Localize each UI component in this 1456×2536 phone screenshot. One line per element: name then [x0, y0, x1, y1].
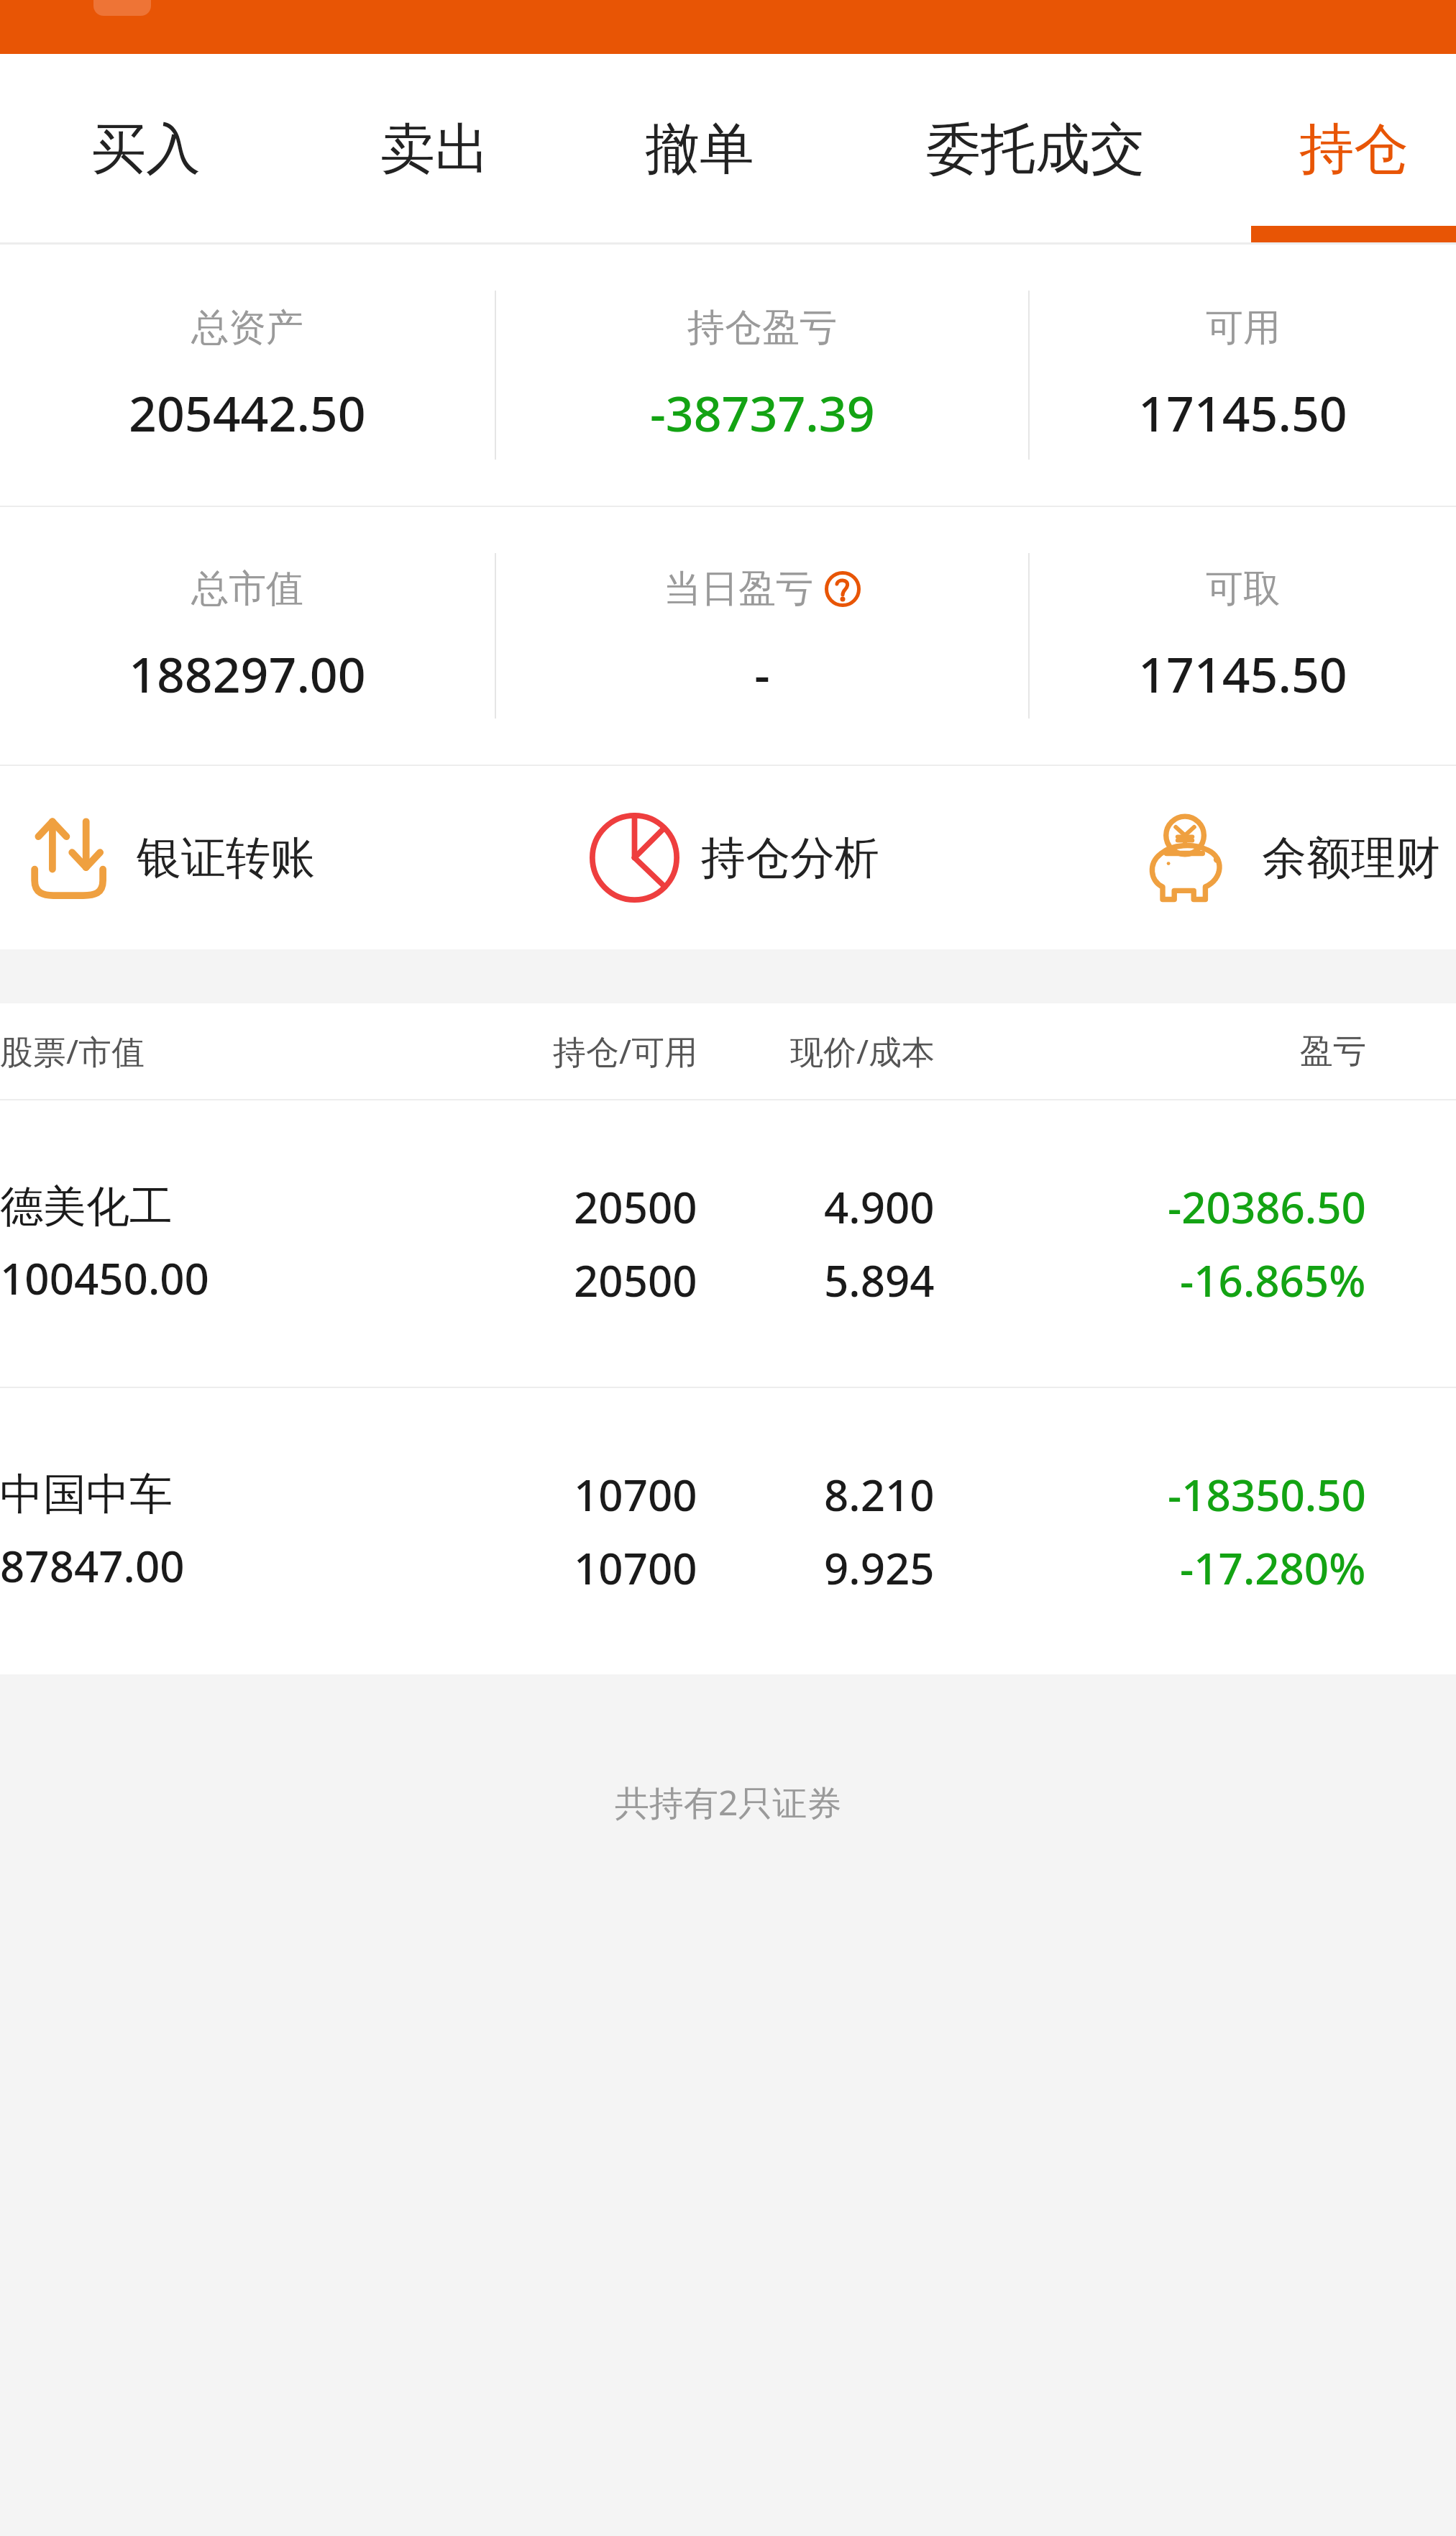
staticText: -20386.50 [1168, 1177, 1366, 1236]
button[interactable]: 总资产 [0, 245, 495, 506]
button[interactable]: 持仓 [1251, 54, 1456, 245]
staticText: 10700 [574, 1465, 697, 1524]
staticText: 87847.00 [0, 1536, 185, 1595]
staticText: 总资产 [191, 304, 303, 352]
button[interactable]: 持仓分析 [568, 766, 1122, 949]
staticText: 股票/市值 [0, 1028, 145, 1074]
staticText: - [754, 640, 770, 707]
other: 余额理财 [1143, 809, 1240, 906]
staticText: 盈亏 [1300, 1031, 1366, 1072]
button[interactable]: 可用 [1030, 245, 1456, 506]
staticText: 20500 [574, 1177, 697, 1236]
staticText: 撤单 [645, 115, 754, 184]
staticText: 可用 [1206, 304, 1281, 352]
staticText: 100450.00 [0, 1249, 209, 1308]
staticText: 德美化工 [0, 1180, 173, 1234]
staticText: 当日盈亏 [664, 565, 813, 613]
staticText: 持仓盈亏 [687, 304, 837, 352]
button[interactable]: 持仓盈亏 [496, 245, 1028, 506]
button[interactable]: 余额理财 [1122, 766, 1456, 949]
staticText: 188297.00 [129, 640, 366, 707]
staticText: 银证转账 [137, 830, 315, 886]
other: 银证转账 [22, 811, 115, 905]
staticText: 共持有2只证券 [615, 1779, 842, 1826]
staticText: 卖出 [380, 115, 490, 184]
staticText: -38737.39 [650, 379, 875, 446]
button[interactable]: 撤单 [579, 54, 820, 245]
staticText: 现价/成本 [789, 1028, 935, 1074]
button[interactable]: 可取 [1030, 507, 1456, 765]
other: Help [825, 571, 861, 607]
staticText: 17145.50 [1138, 379, 1347, 446]
other: 持仓分析 [590, 813, 679, 903]
staticText: -18350.50 [1168, 1465, 1366, 1524]
staticText: 持仓 [1299, 115, 1409, 184]
button[interactable]: 卖出 [291, 54, 579, 245]
staticText: 4.900 [824, 1177, 935, 1236]
button[interactable]: 委托成交 [820, 54, 1251, 245]
staticText: 9.925 [824, 1538, 935, 1597]
staticText: 委托成交 [926, 115, 1145, 184]
button[interactable]: 总市值 [0, 507, 495, 765]
staticText: -17.280% [1180, 1538, 1366, 1597]
staticText: 17145.50 [1138, 640, 1347, 707]
staticText: 余额理财 [1262, 830, 1440, 886]
button[interactable]: 当日盈亏 [496, 507, 1028, 765]
staticText: 10700 [574, 1538, 697, 1597]
button[interactable]: 买入 [0, 54, 291, 245]
staticText: 买入 [91, 115, 201, 184]
staticText: -16.865% [1180, 1251, 1366, 1310]
button[interactable]: 中国中车 [0, 1388, 1456, 1674]
staticText: 可取 [1206, 565, 1281, 613]
button[interactable]: 银证转账 [0, 766, 568, 949]
staticText: 205442.50 [129, 379, 366, 446]
staticText: 中国中车 [0, 1467, 173, 1522]
button[interactable]: 德美化工 [0, 1100, 1456, 1387]
staticText: 8.210 [824, 1465, 935, 1524]
staticText: 20500 [574, 1251, 697, 1310]
staticText: 持仓/可用 [552, 1028, 697, 1074]
staticText: 持仓分析 [701, 830, 879, 886]
staticText: 5.894 [824, 1251, 935, 1310]
staticText: 总市值 [191, 565, 303, 613]
